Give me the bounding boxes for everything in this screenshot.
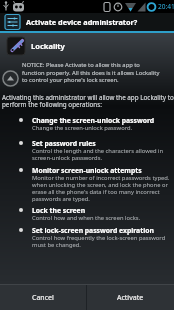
staticText: Activate device administrator? <box>26 17 138 27</box>
staticText: NOTICE: Please Activate to allow this ap… <box>22 61 160 83</box>
staticText: Lock the screen <box>32 206 86 215</box>
staticText: erase all the phone's data if too many i… <box>32 188 160 196</box>
button[interactable] <box>2 70 19 87</box>
staticText: Activate <box>117 293 144 303</box>
staticText: passwords are typed. <box>32 195 90 203</box>
staticText: Change the screen-unlock password. <box>32 124 133 132</box>
staticText: must be changed. <box>32 241 81 249</box>
staticText: screen-unlock passwords. <box>32 154 102 162</box>
staticText: Monitor the number of incorrect password… <box>32 174 170 182</box>
staticText: when unlocking the screen, and lock the … <box>32 181 168 189</box>
button[interactable]: Activate <box>87 285 174 310</box>
staticText: Set lock-screen password expiration <box>32 226 154 235</box>
staticText: Change the screen-unlock password <box>32 116 155 125</box>
staticText: Control how and when the screen locks. <box>32 214 141 222</box>
button[interactable]: Cancel <box>0 285 86 310</box>
staticText: Activating this administrator will allow… <box>2 93 174 109</box>
staticText: Cancel <box>32 293 54 303</box>
staticText: Control how frequently the lock-screen p… <box>32 234 166 242</box>
staticText: Lockality <box>31 41 65 51</box>
staticText: 20:41 <box>158 2 174 11</box>
staticText: Control the length and the characters al… <box>32 147 164 155</box>
staticText: Monitor screen-unlock attempts <box>32 166 142 175</box>
staticText: Set password rules <box>32 139 96 148</box>
